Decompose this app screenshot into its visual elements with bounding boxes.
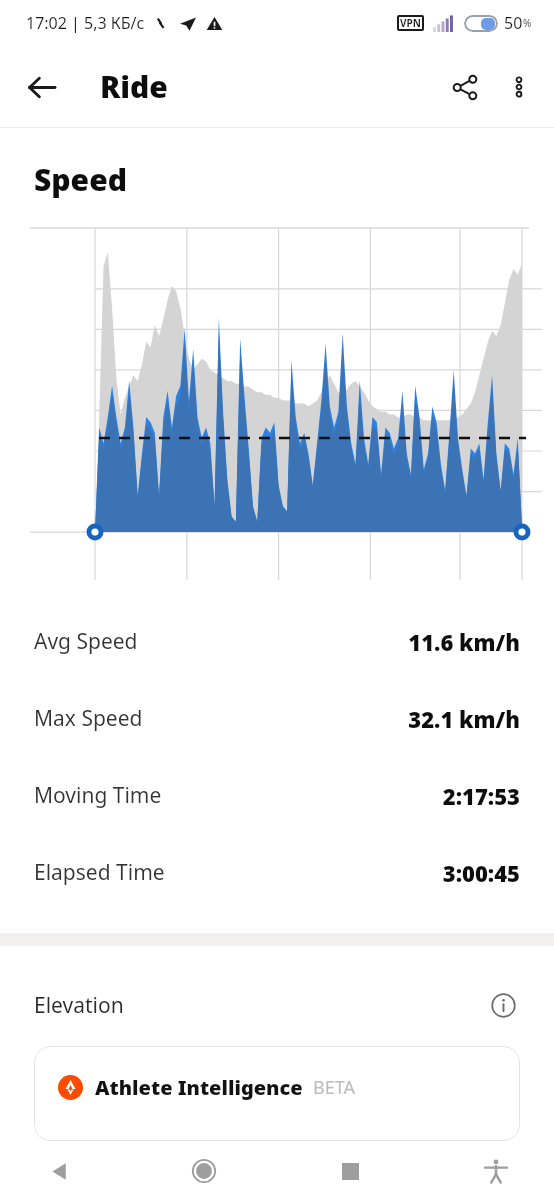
staticText: Athlete Intelligence [95, 1074, 303, 1101]
button[interactable]: Share [438, 60, 492, 114]
staticText: Speed [34, 159, 127, 200]
staticText: Elapsed Time [34, 858, 165, 887]
staticText: % [523, 16, 532, 30]
button[interactable]: Athlete Intelligence [34, 1046, 520, 1141]
button[interactable]: Accessibility [468, 1143, 524, 1199]
button[interactable]: Home [176, 1143, 232, 1199]
staticText: BETA [313, 1075, 355, 1100]
button[interactable]: Recent apps [322, 1143, 378, 1199]
staticText: Moving Time [34, 781, 162, 810]
button[interactable]: Back [14, 60, 68, 114]
staticText: VPN [400, 16, 421, 30]
button[interactable]: Avg Speed [0, 603, 554, 680]
staticText: 32.1 km/h [408, 704, 520, 734]
staticText: 50 [504, 12, 523, 34]
button[interactable]: Elapsed Time [0, 834, 554, 911]
staticText: 2:17:53 [442, 781, 520, 811]
staticText: Max Speed [34, 704, 143, 733]
staticText: Avg Speed [34, 627, 138, 656]
button[interactable]: Elevation info [486, 988, 520, 1022]
staticText: Elevation [34, 991, 124, 1020]
staticText: 11.6 km/h [408, 627, 520, 657]
button[interactable]: More options [492, 60, 546, 114]
staticText: 17:02 | 5,3 КБ/с [26, 12, 145, 34]
button[interactable]: Moving Time [0, 757, 554, 834]
staticText: 3:00:45 [442, 858, 520, 888]
button[interactable]: Back [30, 1143, 86, 1199]
staticText: Ride [100, 66, 168, 107]
button[interactable]: Max Speed [0, 680, 554, 757]
